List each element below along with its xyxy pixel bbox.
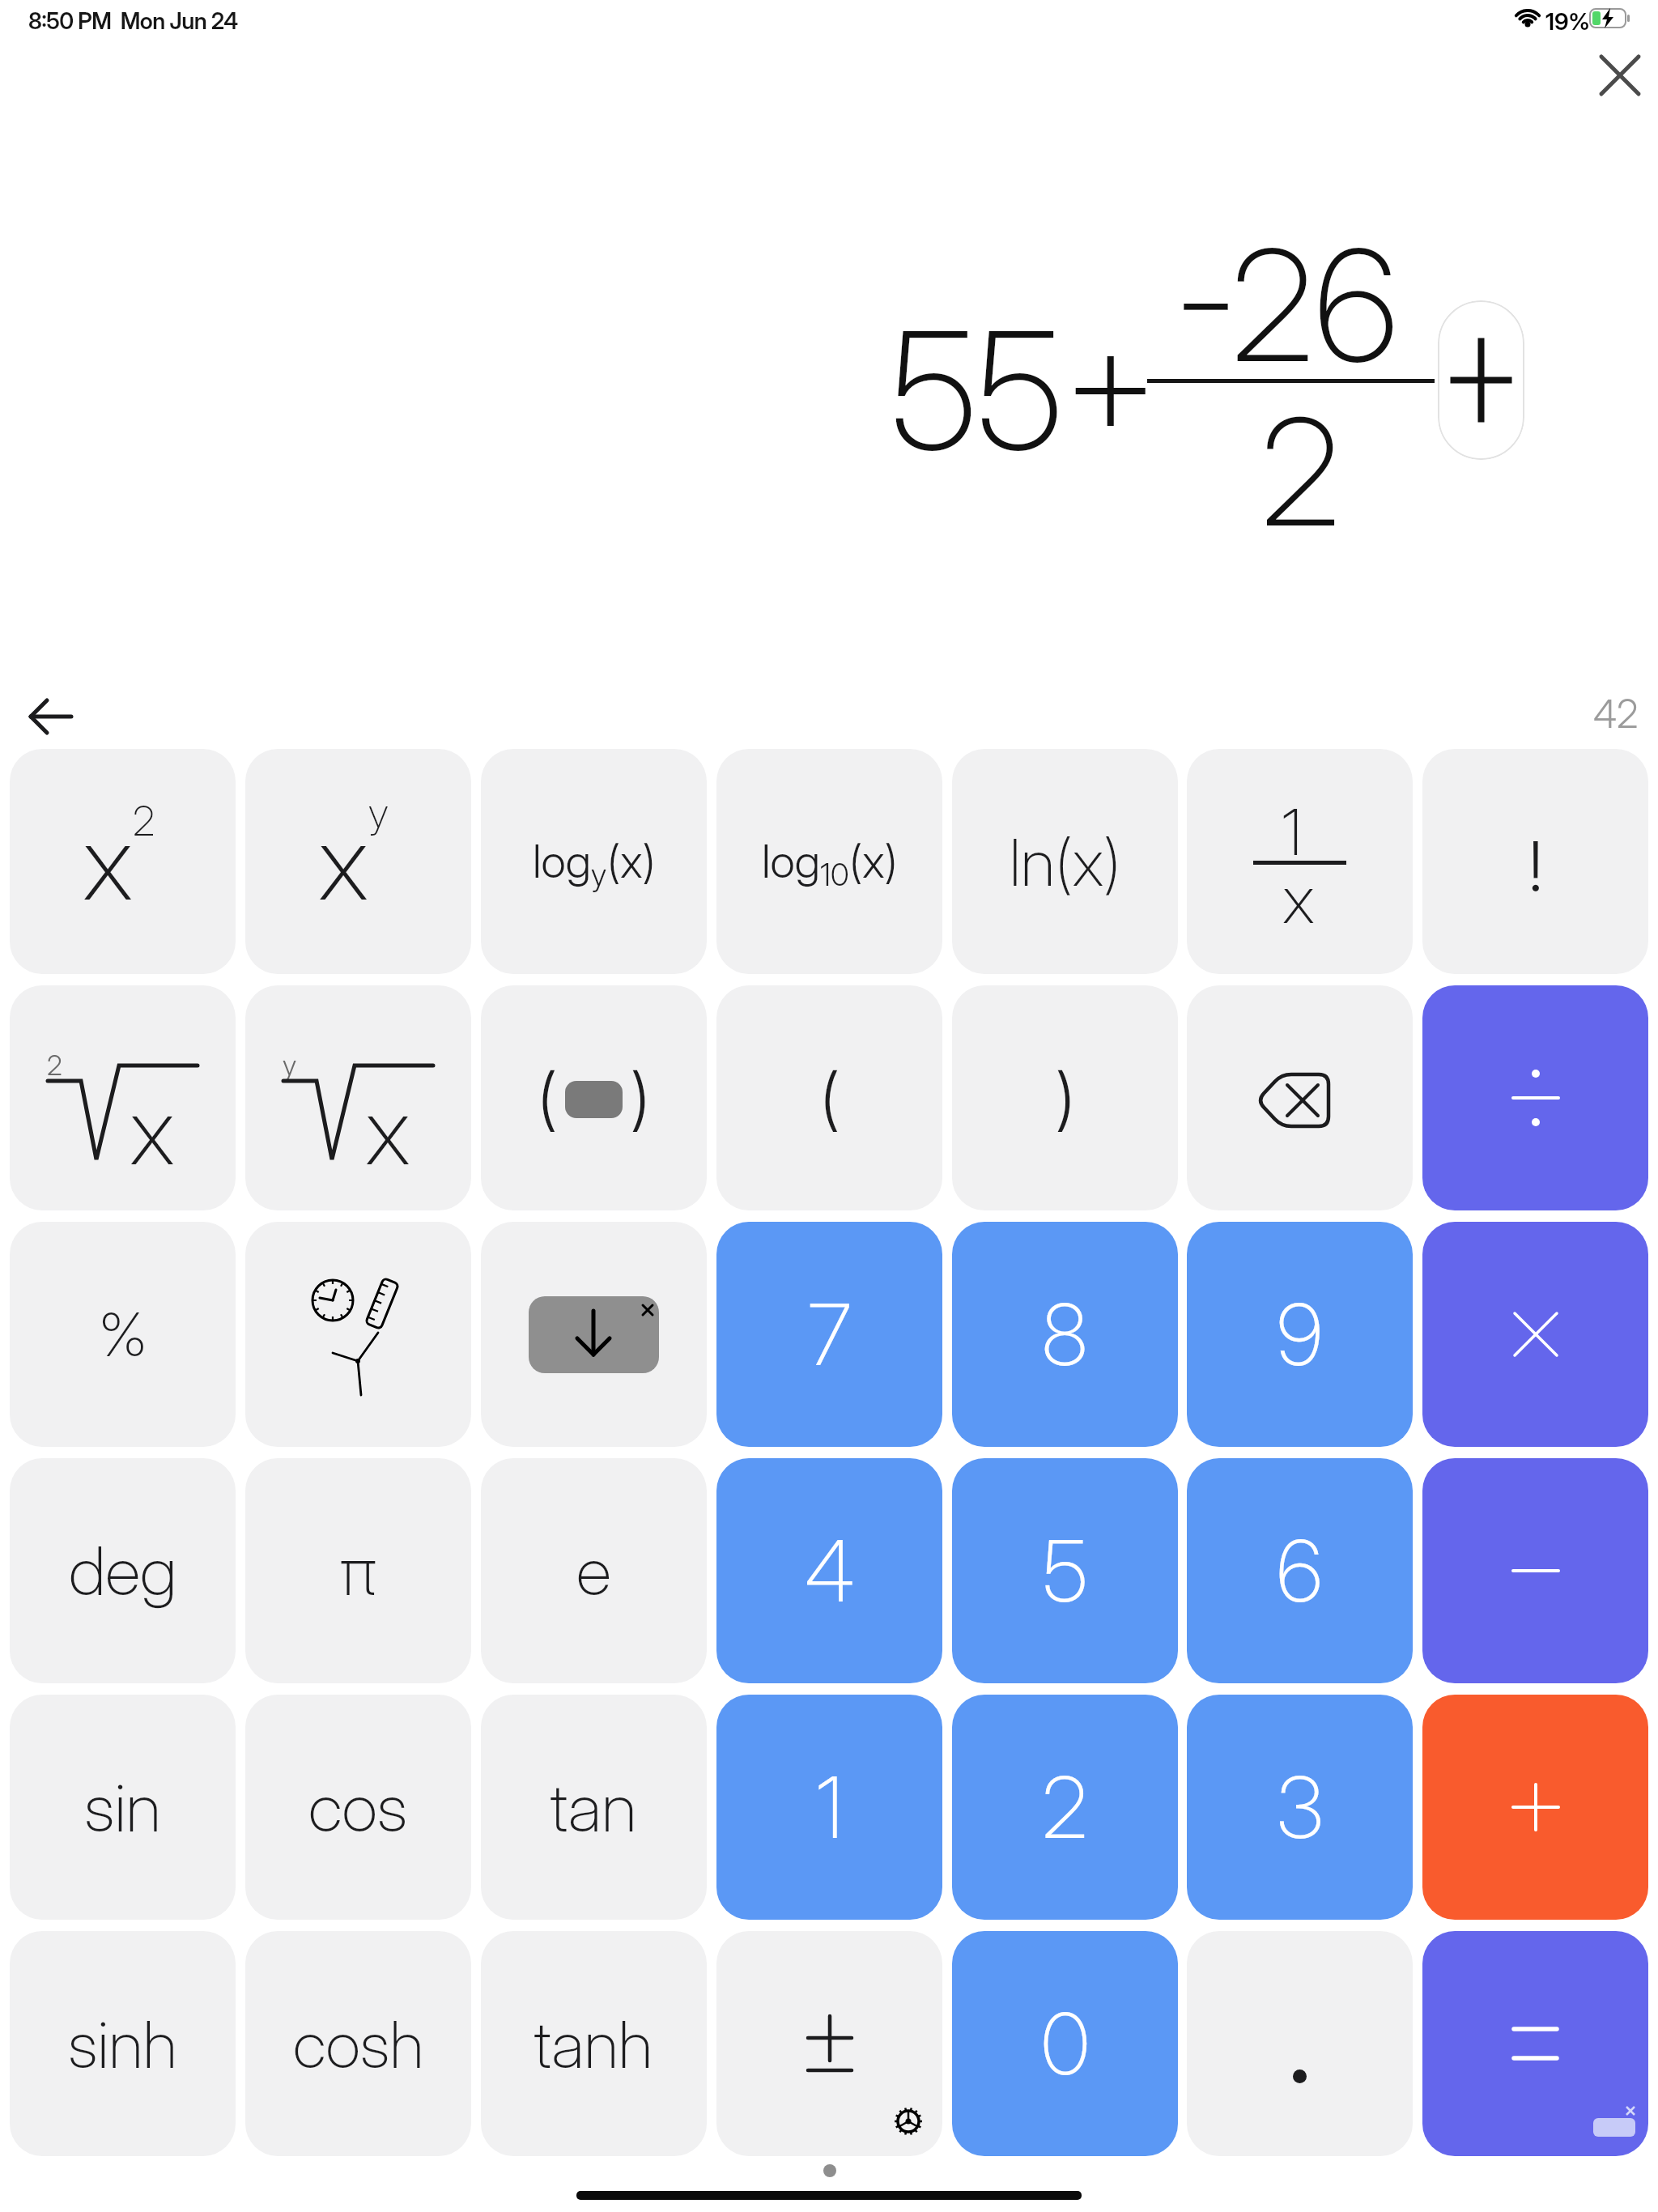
staticText: e [576,1531,611,1611]
staticText: 6 [1277,1520,1323,1622]
button[interactable]: 7 [716,1222,942,1447]
button[interactable]: 6 [1187,1458,1413,1683]
staticText: 4 [805,1520,855,1622]
staticText: x [130,1074,175,1187]
button[interactable] [1422,1695,1648,1920]
button[interactable]: 0 [952,1931,1178,2156]
staticText: ( [820,1057,840,1139]
staticText: 8 [1042,1283,1088,1385]
staticText: 7 [808,1283,852,1385]
button[interactable]: tan [481,1695,707,1920]
staticText: ln(x) [1010,823,1121,901]
staticText: tan [551,1767,637,1848]
button[interactable]: 3 [1187,1695,1413,1920]
staticText: ! [1528,825,1543,908]
staticText: 2 [1261,383,1341,561]
button[interactable] [1422,1458,1648,1683]
staticText: 1 [816,1756,844,1858]
button[interactable]: sinh [10,1931,236,2156]
button[interactable]: x [10,749,236,974]
button[interactable]: 1 [716,1695,942,1920]
staticText: log [533,834,591,889]
button[interactable] [23,692,79,741]
staticText: 3 [1277,1756,1324,1858]
button[interactable]: y [245,985,471,1210]
button[interactable]: deg [10,1458,236,1683]
button[interactable] [1438,300,1524,460]
button[interactable]: cosh [245,1931,471,2156]
staticText: ) [631,1057,650,1139]
button[interactable]: 1 [1187,749,1413,974]
button[interactable]: ( [716,985,942,1210]
button[interactable]: tanh [481,1931,707,2156]
button[interactable]: 2 [952,1695,1178,1920]
button[interactable]: 9 [1187,1222,1413,1447]
staticText: sin [84,1767,161,1848]
staticText: 9 [1277,1283,1323,1385]
button[interactable]: e [481,1458,707,1683]
staticText: (x) [849,834,898,889]
button[interactable]: log [481,749,707,974]
staticText: 8:50 PM Mon Jun 24 [28,7,238,35]
button[interactable] [1422,1931,1648,2156]
staticText: sinh [68,2005,177,2083]
button[interactable]: x [245,749,471,974]
button[interactable]: 5 [952,1458,1178,1683]
staticText: 42 [1593,690,1639,737]
button[interactable]: π [245,1458,471,1683]
staticText: log [762,834,820,889]
staticText: 2 [1042,1756,1088,1858]
button[interactable]: 4 [716,1458,942,1683]
button[interactable]: ) [952,985,1178,1210]
button[interactable] [1187,1931,1413,2156]
button[interactable]: 8 [952,1222,1178,1447]
button[interactable]: sin [10,1695,236,1920]
staticText: y [283,1049,297,1082]
staticText: 2 [133,797,155,845]
staticText: x [365,1074,410,1187]
button[interactable]: ( [481,985,707,1210]
button[interactable] [1422,1222,1648,1447]
staticText: 10 [820,856,849,893]
staticText: y [368,789,389,837]
button[interactable]: ! [1422,749,1648,974]
staticText: 19% [1545,7,1590,36]
staticText: ( [538,1057,557,1139]
staticText: π [340,1531,376,1611]
staticText: % [99,1298,147,1371]
button[interactable]: cos [245,1695,471,1920]
button[interactable]: ln(x) [952,749,1178,974]
staticText: (x) [607,834,656,889]
staticText: cos [308,1767,408,1848]
button[interactable]: % [10,1222,236,1447]
staticText: 0 [1041,1993,1090,2095]
staticText: tanh [534,2005,653,2083]
button[interactable] [1187,985,1413,1210]
button[interactable]: 2 [10,985,236,1210]
button[interactable] [1422,985,1648,1210]
button[interactable] [716,1931,942,2156]
staticText: x [1282,859,1315,939]
staticText: 2 [47,1049,62,1082]
staticText: y [591,856,607,893]
staticText: -26 [1175,212,1398,398]
staticText: x [83,799,134,925]
button[interactable] [245,1222,471,1447]
staticText: ) [1056,1057,1075,1139]
button[interactable]: log [716,749,942,974]
staticText: x [318,799,369,925]
staticText: 1 [1282,793,1303,870]
staticText: 55+ [891,292,1158,488]
staticText: 5 [1043,1520,1088,1622]
staticText: deg [69,1531,177,1611]
staticText: cosh [293,2005,424,2083]
button[interactable] [1592,47,1648,104]
button[interactable] [481,1222,707,1447]
